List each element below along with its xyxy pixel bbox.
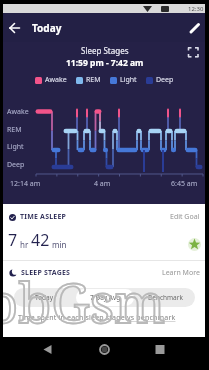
button[interactable]: Deep <box>146 75 174 85</box>
staticText: Learn More <box>162 268 200 278</box>
staticText: Deep <box>156 75 174 85</box>
staticText: TIME ASLEEP <box>20 212 67 222</box>
staticText: Light <box>7 142 24 152</box>
staticText: Sleep Stages <box>81 45 129 56</box>
staticText: Awake <box>45 75 67 85</box>
staticText: Time spent in each sleep stage <box>18 313 127 323</box>
button[interactable]: Benchmark <box>135 288 195 307</box>
staticText: SLEEP STAGES <box>21 268 71 278</box>
staticText: Deep <box>7 160 25 170</box>
button[interactable]: REM <box>76 75 101 85</box>
staticText: hr <box>18 239 31 250</box>
button[interactable]: 7 Day Avg <box>76 289 134 306</box>
button[interactable]: vs benchmark <box>127 313 176 323</box>
staticText: Awake <box>7 107 29 117</box>
staticText: obGsm <box>0 265 166 339</box>
button[interactable] <box>180 13 209 42</box>
staticText: Light <box>120 75 137 85</box>
staticText: Today <box>32 21 62 35</box>
staticText: 6:45 am <box>171 179 198 189</box>
button[interactable]: TIME ASLEEP <box>9 212 200 222</box>
staticText: 11:59 pm - 7:42 am <box>66 57 144 69</box>
staticText: 7 <box>8 229 18 251</box>
staticText: min <box>50 239 67 250</box>
staticText: 12:30 <box>188 5 204 13</box>
staticText: 42 <box>31 229 50 251</box>
button[interactable] <box>130 337 190 370</box>
staticText: 7 Day Avg <box>90 293 121 302</box>
button[interactable] <box>20 337 80 370</box>
button[interactable]: Awake <box>35 75 67 85</box>
button[interactable]: Today <box>14 288 75 307</box>
staticText: 12:14 am <box>10 179 41 189</box>
button[interactable]: SLEEP STAGES <box>9 268 200 278</box>
staticText: Edit Goal <box>170 212 200 222</box>
staticText: Benchmark <box>148 293 183 302</box>
button[interactable] <box>0 13 29 42</box>
staticText: REM <box>7 125 22 135</box>
button[interactable]: Light <box>110 75 137 85</box>
staticText: 4 am <box>94 179 111 189</box>
button[interactable] <box>188 47 199 58</box>
staticText: REM <box>86 75 101 85</box>
button[interactable] <box>75 337 135 370</box>
staticText: Today <box>35 293 54 302</box>
